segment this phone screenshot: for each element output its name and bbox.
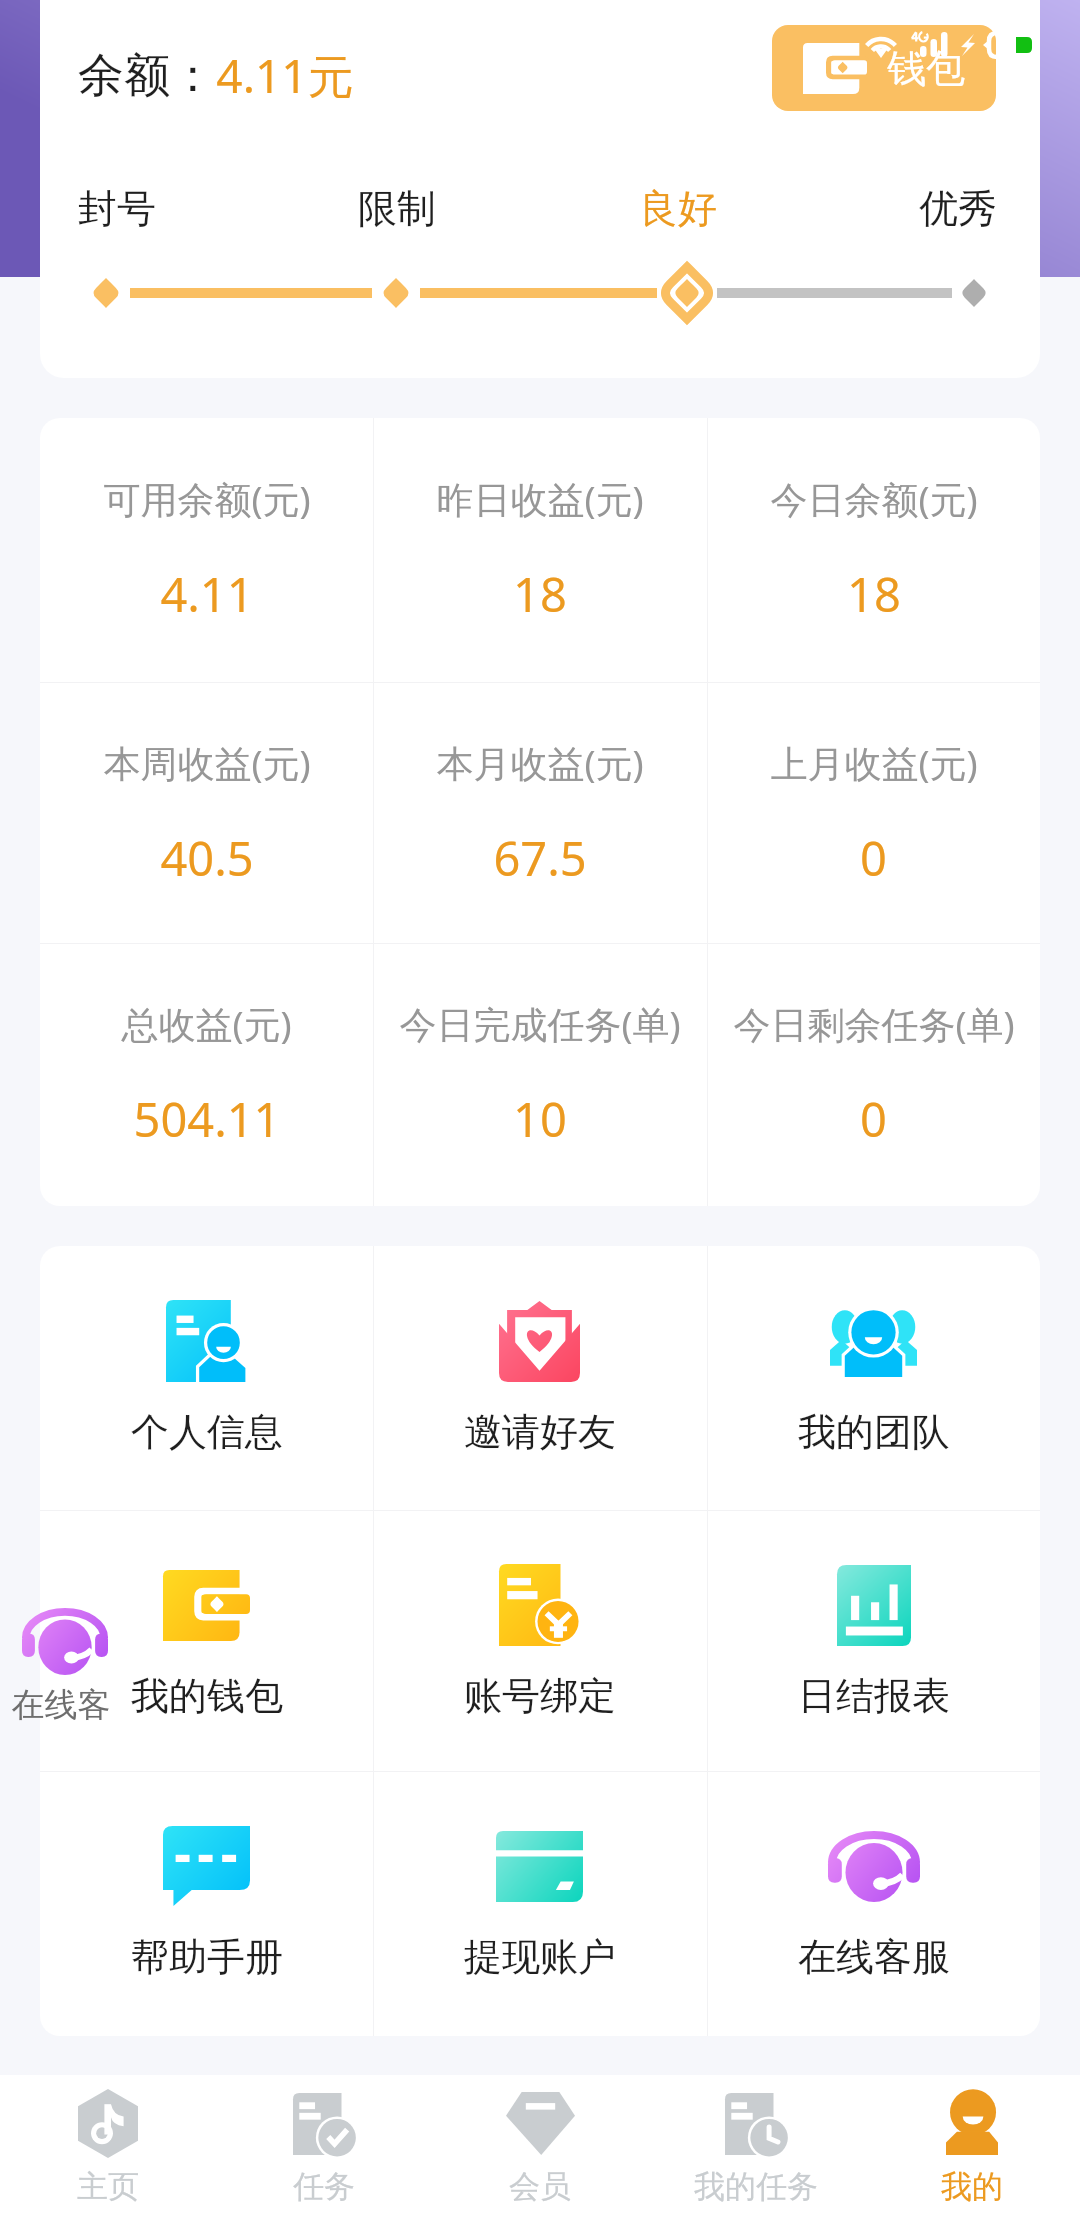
staticText: 可用余额(元) — [103, 473, 311, 524]
staticText: 在线客服 — [11, 1684, 112, 1724]
button[interactable]: 我的团队 — [707, 1246, 1040, 1510]
staticText: 40.5 — [160, 826, 254, 890]
staticText: 个人信息 — [131, 1408, 283, 1456]
button[interactable]: 个人信息 — [40, 1246, 373, 1510]
staticText: 会员 — [509, 2167, 571, 2206]
button[interactable]: 我的任务 — [648, 2075, 864, 2220]
button[interactable]: 邀请好友 — [373, 1246, 706, 1510]
staticText: 本月收益(元) — [436, 737, 644, 788]
staticText: 0 — [860, 1087, 887, 1151]
button[interactable]: 本月收益(元) — [373, 682, 706, 943]
button[interactable]: 账号绑定 — [373, 1510, 706, 1771]
staticText: 钱包 — [887, 44, 965, 93]
staticText: 在线客服 — [798, 1933, 950, 1981]
button[interactable]: 昨日收益(元) — [373, 418, 706, 682]
staticText: 我的钱包 — [131, 1672, 283, 1720]
staticText: 日结报表 — [798, 1672, 950, 1720]
staticText: 我的任务 — [694, 2167, 818, 2206]
staticText: 67.5 — [493, 826, 587, 890]
button[interactable]: 帮助手册 — [40, 1771, 373, 2034]
staticText: 余额： — [78, 47, 216, 105]
staticText: 今日剩余任务(单) — [733, 998, 1015, 1049]
staticText: 账号绑定 — [464, 1672, 616, 1720]
staticText: 上月收益(元) — [770, 737, 978, 788]
staticText: 帮助手册 — [131, 1933, 283, 1981]
staticText: 今日完成任务(单) — [399, 998, 681, 1049]
button[interactable]: 我的 — [864, 2075, 1080, 2220]
staticText: 邀请好友 — [464, 1408, 616, 1456]
staticText: 总收益(元) — [121, 998, 292, 1049]
staticText: 本周收益(元) — [103, 737, 311, 788]
button[interactable]: 任务 — [216, 2075, 432, 2220]
button[interactable]: 上月收益(元) — [707, 682, 1040, 943]
staticText: 主页 — [77, 2167, 139, 2206]
button[interactable]: 今日剩余任务(单) — [707, 943, 1040, 1206]
staticText: 封号 — [78, 184, 156, 233]
staticText: 任务 — [293, 2167, 355, 2206]
staticText: 优秀 — [919, 184, 997, 233]
staticText: 良好 — [639, 184, 717, 233]
staticText: 我的 — [941, 2167, 1003, 2206]
staticText: 18 — [847, 562, 901, 626]
button[interactable]: 可用余额(元) — [40, 418, 373, 682]
staticText: 今日余额(元) — [770, 473, 978, 524]
staticText: 我的团队 — [798, 1408, 950, 1456]
button[interactable]: 提现账户 — [373, 1771, 706, 2034]
button[interactable]: 今日余额(元) — [707, 418, 1040, 682]
button[interactable]: 本周收益(元) — [40, 682, 373, 943]
button[interactable]: 钱包 — [772, 25, 996, 111]
button[interactable]: 总收益(元) — [40, 943, 373, 1206]
staticText: 限制 — [358, 184, 436, 233]
staticText: 昨日收益(元) — [436, 473, 644, 524]
button[interactable]: 日结报表 — [707, 1510, 1040, 1771]
button[interactable]: 我的钱包 — [40, 1510, 373, 1771]
staticText: 4.11元 — [216, 44, 354, 107]
staticText: 提现账户 — [464, 1933, 616, 1981]
staticText: 0 — [860, 826, 887, 890]
button[interactable]: 主页 — [0, 2075, 216, 2220]
button[interactable]: 会员 — [432, 2075, 648, 2220]
button[interactable]: 在线客服 — [11, 1600, 113, 1724]
staticText: 10 — [513, 1087, 567, 1151]
staticText: 18 — [513, 562, 567, 626]
staticText: 504.11 — [133, 1087, 281, 1151]
staticText: 4.11 — [160, 562, 254, 626]
button[interactable]: 今日完成任务(单) — [373, 943, 706, 1206]
button[interactable]: 在线客服 — [707, 1771, 1040, 2034]
